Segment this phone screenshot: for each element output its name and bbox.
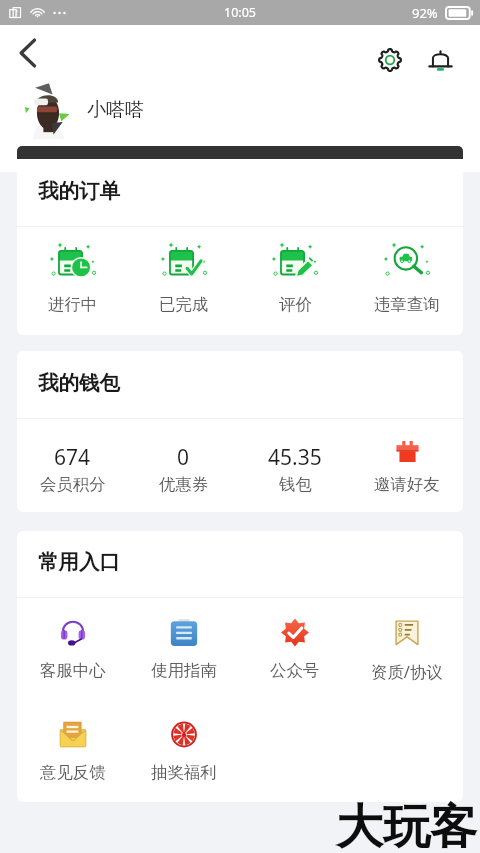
- button[interactable]: 进行中: [17, 227, 128, 335]
- staticText: 45.35: [268, 443, 322, 472]
- button[interactable]: 评价: [239, 227, 351, 335]
- button[interactable]: Back: [4, 25, 52, 80]
- staticText: 0: [177, 443, 190, 472]
- button[interactable]: 0: [128, 419, 239, 512]
- button[interactable]: 674: [17, 419, 128, 512]
- button[interactable]: 45.35: [239, 419, 351, 512]
- staticText: 评价: [279, 294, 312, 315]
- staticText: 我的订单: [38, 178, 120, 204]
- button[interactable]: 抽奖福利: [128, 700, 239, 802]
- staticText: 674: [54, 443, 91, 472]
- staticText: 10:05: [224, 4, 256, 21]
- button[interactable]: 已完成: [128, 227, 239, 335]
- staticText: 公众号: [270, 660, 320, 681]
- staticText: 优惠券: [159, 474, 209, 495]
- staticText: 进行中: [48, 294, 98, 315]
- staticText: 会员积分: [40, 474, 106, 495]
- button[interactable]: Notifications: [418, 36, 462, 84]
- button[interactable]: 公众号: [239, 598, 351, 700]
- staticText: 邀请好友: [374, 474, 440, 495]
- staticText: 92%: [412, 4, 438, 22]
- staticText: 大玩客: [336, 798, 477, 853]
- button[interactable]: 意见反馈: [17, 700, 128, 802]
- staticText: 常用入口: [38, 549, 120, 575]
- button[interactable]: 邀请好友: [351, 419, 463, 512]
- button[interactable]: 资质/协议: [351, 598, 463, 700]
- button[interactable]: 小嗒嗒: [0, 80, 480, 140]
- staticText: 客服中心: [40, 660, 106, 681]
- staticText: 小嗒嗒: [87, 98, 144, 122]
- staticText: 使用指南: [151, 660, 217, 681]
- button[interactable]: 客服中心: [17, 598, 128, 700]
- button[interactable]: Settings: [368, 36, 412, 84]
- staticText: 意见反馈: [40, 762, 106, 783]
- staticText: 已完成: [159, 294, 209, 315]
- staticText: 钱包: [279, 474, 312, 495]
- button[interactable]: 使用指南: [128, 598, 239, 700]
- staticText: 抽奖福利: [151, 762, 217, 783]
- staticText: 资质/协议: [371, 660, 443, 682]
- button[interactable]: 违章查询: [351, 227, 463, 335]
- staticText: 我的钱包: [38, 370, 120, 396]
- staticText: 违章查询: [374, 294, 440, 315]
